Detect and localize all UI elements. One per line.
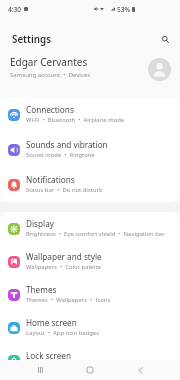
staticText: Settings <box>12 33 52 46</box>
staticText: Layout • App icon badges <box>26 329 100 337</box>
staticText: Sounds and vibration <box>26 139 108 150</box>
button[interactable]: Home screen <box>8 311 174 344</box>
button[interactable]: Notifications <box>8 167 174 202</box>
staticText: Connections <box>26 104 74 115</box>
button[interactable]: Sounds and vibration <box>8 132 174 167</box>
staticText: Status bar • Do not disturb <box>26 186 103 194</box>
staticText: Themes • Wallpapers • Icons <box>26 296 111 304</box>
button[interactable]: Edgar Cervantes <box>0 50 180 83</box>
staticText: Display <box>26 218 54 229</box>
button[interactable]: Display <box>8 212 174 245</box>
staticText: 53% <box>117 5 131 14</box>
button[interactable]: Recents <box>25 360 55 380</box>
staticText: Lock screen <box>26 350 72 361</box>
staticText: Sound mode • Ringtone <box>26 151 95 159</box>
staticText: Home screen <box>26 317 77 328</box>
staticText: Themes <box>26 284 57 295</box>
staticText: Screen lock type • Always On Display <box>26 362 130 370</box>
button[interactable]: Search <box>155 29 175 49</box>
staticText: Wallpapers • Color palette <box>26 263 101 271</box>
staticText: Samsung account • Devices <box>10 71 91 79</box>
button[interactable]: Wallpaper and style <box>8 245 174 278</box>
staticText: Wallpaper and style <box>26 251 102 262</box>
button[interactable]: Connections <box>8 97 174 132</box>
button[interactable]: Home <box>75 360 105 380</box>
staticText: Edgar Cervantes <box>10 55 88 69</box>
staticText: Wi-Fi • Bluetooth • Airplane mode <box>26 116 125 124</box>
button[interactable]: Lock screen <box>8 344 174 377</box>
staticText: Brightness • Eye comfort shield • Naviga… <box>26 230 165 238</box>
button[interactable]: Back <box>125 360 155 380</box>
staticText: 4:30 <box>8 5 22 14</box>
staticText: Notifications <box>26 174 75 185</box>
button[interactable]: Themes <box>8 278 174 311</box>
